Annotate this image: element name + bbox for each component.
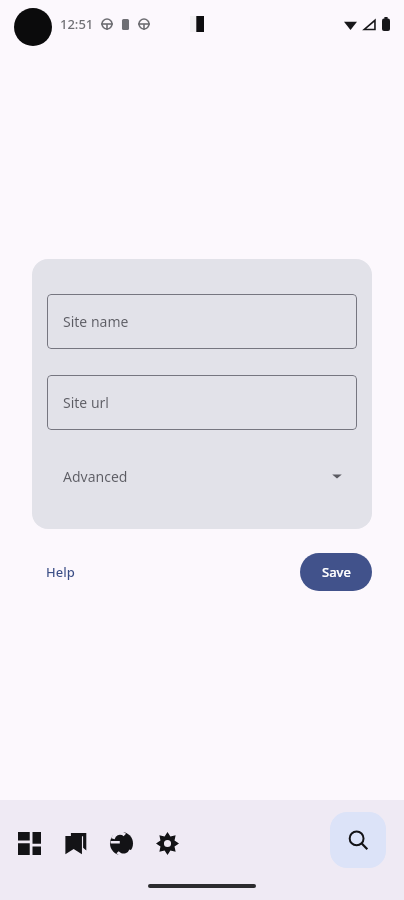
staticText: Site name [63, 312, 129, 331]
staticText: 12:51 [60, 15, 94, 33]
button[interactable]: Save [300, 553, 372, 591]
button[interactable]: Web [98, 820, 144, 866]
button[interactable]: Dashboard [6, 820, 52, 866]
button[interactable]: Search [330, 812, 386, 868]
staticText: Help [46, 563, 75, 581]
button[interactable]: Advanced [47, 452, 357, 500]
staticText: Save [322, 563, 351, 581]
button[interactable]: Help [32, 555, 89, 589]
button[interactable]: Settings [144, 820, 190, 866]
staticText: Site url [63, 393, 109, 412]
button[interactable]: Bookmarks [52, 820, 98, 866]
button[interactable]: Site url [47, 375, 357, 430]
staticText: Advanced [63, 467, 128, 486]
button[interactable]: Site name [47, 294, 357, 349]
